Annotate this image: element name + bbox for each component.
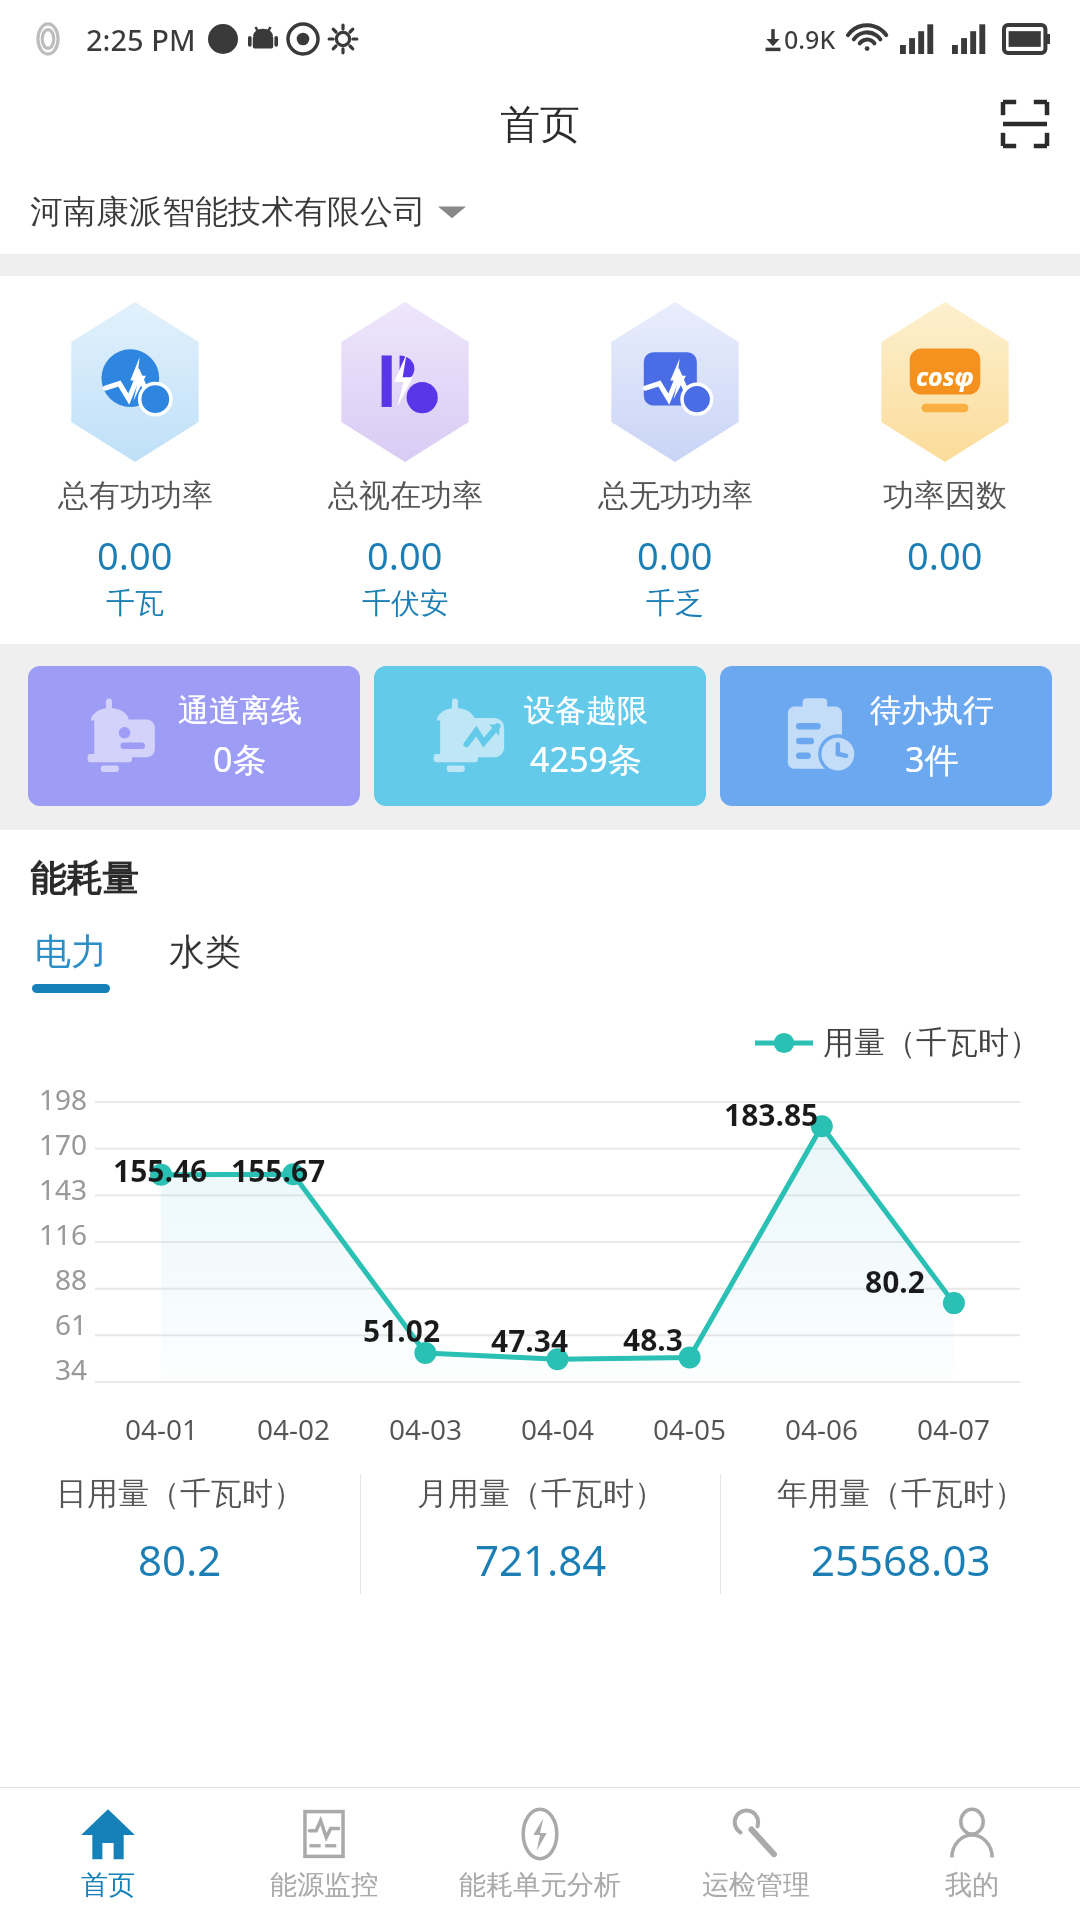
staticText: 0.00 [367, 529, 443, 581]
staticText: 25568.03 [811, 1531, 991, 1588]
staticText: 首页 [500, 99, 580, 149]
staticText: 48.3 [623, 1319, 683, 1360]
button[interactable]: 总无功功率 [540, 298, 810, 626]
staticText: 能耗单元分析 [459, 1868, 621, 1902]
button[interactable]: 总视在功率 [270, 298, 540, 626]
staticText: 总视在功率 [328, 476, 483, 515]
staticText: 电力 [35, 929, 107, 974]
button[interactable]: 河南康派智能技术有限公司 [0, 170, 1080, 254]
staticText: 千瓦 [106, 585, 164, 622]
staticText: 能源监控 [270, 1868, 378, 1902]
button[interactable]: 日用量（千瓦时） [0, 1474, 360, 1588]
staticText: 通道离线 [178, 691, 302, 730]
staticText: 我的 [945, 1868, 999, 1902]
button[interactable]: 能耗单元分析 [432, 1788, 648, 1920]
staticText: 183.85 [724, 1094, 819, 1135]
button[interactable]: 我的 [864, 1788, 1080, 1920]
staticText: 年用量（千瓦时） [777, 1474, 1025, 1513]
staticText: 0.9K [784, 22, 836, 56]
staticText: 0.00 [97, 529, 173, 581]
button[interactable]: 待办执行 [720, 666, 1052, 806]
staticText: 721.84 [475, 1531, 607, 1588]
button[interactable]: 运检管理 [648, 1788, 864, 1920]
staticText: 51.02 [363, 1310, 441, 1351]
staticText: 04-05 [653, 1410, 727, 1448]
staticText: 80.2 [138, 1531, 222, 1588]
button[interactable]: Scan QR code [996, 95, 1054, 153]
staticText: 河南康派智能技术有限公司 [30, 191, 426, 233]
staticText: cosφ [916, 359, 974, 393]
staticText: 04-06 [785, 1410, 859, 1448]
button[interactable]: 水类 [164, 929, 246, 993]
staticText: 2:25 PM [86, 20, 196, 59]
button[interactable]: 年用量（千瓦时） [721, 1474, 1080, 1588]
staticText: 0.00 [637, 529, 713, 581]
staticText: 04-02 [257, 1410, 331, 1448]
button[interactable]: 月用量（千瓦时） [361, 1474, 720, 1588]
staticText: 34 [55, 1350, 88, 1388]
staticText: 80.2 [865, 1261, 925, 1302]
staticText: 04-03 [389, 1410, 463, 1448]
staticText: 首页 [81, 1868, 135, 1902]
staticText: 总无功功率 [598, 476, 753, 515]
staticText: 千伏安 [362, 585, 449, 622]
staticText: 116 [39, 1215, 88, 1253]
staticText: 运检管理 [702, 1868, 810, 1902]
staticText: 月用量（千瓦时） [417, 1474, 665, 1513]
staticText: 4259条 [530, 736, 642, 782]
staticText: 日用量（千瓦时） [56, 1474, 304, 1513]
staticText: 04-01 [125, 1410, 199, 1448]
staticText: 155.46 [113, 1150, 208, 1191]
staticText: 198 [39, 1080, 88, 1118]
staticText: 0条 [213, 736, 267, 782]
staticText: 能耗量 [30, 856, 138, 901]
staticText: 143 [39, 1170, 88, 1208]
staticText: 水类 [169, 929, 241, 974]
staticText: 总有功功率 [58, 476, 213, 515]
button[interactable]: 总有功功率 [0, 298, 270, 626]
staticText: 170 [39, 1125, 88, 1163]
button[interactable]: 电力 [30, 929, 112, 993]
staticText: 155.67 [231, 1150, 326, 1191]
button[interactable]: 设备越限 [374, 666, 706, 806]
button[interactable]: 通道离线 [28, 666, 360, 806]
staticText: 设备越限 [524, 691, 648, 730]
staticText: 3件 [905, 736, 959, 782]
button[interactable]: 能源监控 [216, 1788, 432, 1920]
staticText: 千乏 [646, 585, 704, 622]
staticText: 待办执行 [870, 691, 994, 730]
staticText: 04-07 [917, 1410, 991, 1448]
staticText: 04-04 [521, 1410, 595, 1448]
staticText: 功率因数 [883, 476, 1007, 515]
staticText: 61 [55, 1305, 88, 1343]
staticText: 47.34 [491, 1320, 569, 1361]
staticText: 88 [55, 1260, 88, 1298]
button[interactable]: 首页 [0, 1788, 216, 1920]
button[interactable]: cosφ [810, 298, 1080, 628]
staticText: 用量（千瓦时） [823, 1023, 1040, 1062]
staticText: 0.00 [907, 529, 983, 581]
